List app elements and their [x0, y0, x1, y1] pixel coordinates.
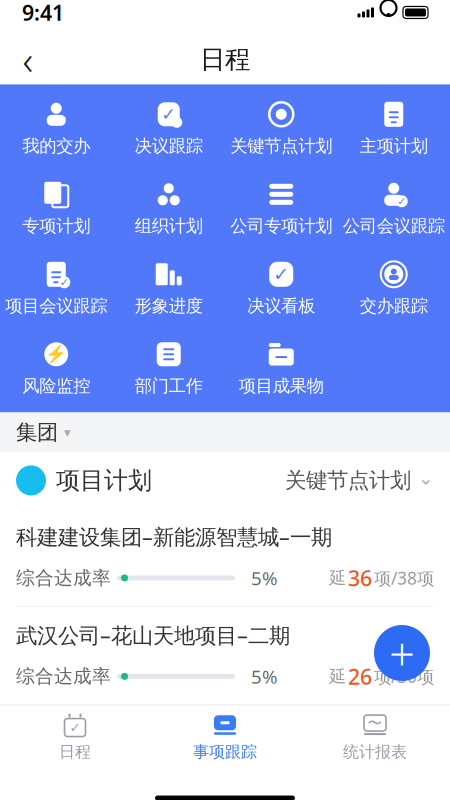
staticText: 主项计划 [360, 135, 428, 157]
staticText: 公司会议跟踪 [343, 215, 445, 237]
button[interactable]: 武汉公司–花山天地项目–二期 [0, 607, 450, 705]
staticText: 9:41 [22, 0, 64, 27]
staticText: ▾ [64, 425, 71, 440]
staticText: 决议看板 [247, 295, 315, 317]
button[interactable]: 我的交办 [0, 94, 112, 162]
staticText: 风险监控 [22, 375, 90, 397]
staticText: ✓ [397, 195, 406, 207]
button[interactable]: ✓ [0, 711, 150, 763]
staticText: 5% [251, 565, 278, 590]
button[interactable]: 集团 [0, 412, 450, 452]
button[interactable]: 〜 [300, 711, 450, 763]
button[interactable]: ✓ [225, 254, 337, 322]
staticText: 组织计划 [135, 215, 203, 237]
staticText: 36 [348, 564, 372, 592]
button[interactable]: ✓ [0, 254, 112, 322]
staticText: 统计报表 [343, 742, 407, 762]
staticText: ✓ [161, 104, 176, 124]
staticText: 形象进度 [135, 295, 203, 317]
staticText: 关键节点计划 [285, 467, 411, 493]
staticText: ✓ [69, 720, 80, 735]
button[interactable]: 组织计划 [112, 174, 225, 242]
staticText: 项/30项 [374, 665, 434, 688]
button[interactable]: ✓ [337, 174, 450, 242]
button[interactable]: 项目计划 [0, 452, 450, 508]
button[interactable]: 事项跟踪 [150, 711, 300, 763]
staticText: 5% [251, 664, 278, 689]
button[interactable]: 专项计划 [0, 174, 112, 242]
button[interactable]: ✓ [112, 94, 225, 162]
staticText: ⚡ [45, 344, 67, 364]
staticText: 部门工作 [135, 375, 203, 397]
staticText: 交办跟踪 [360, 295, 428, 317]
staticText: 项目成果物 [239, 375, 324, 397]
staticText: 26 [348, 662, 372, 690]
staticText: ⌄ [418, 467, 434, 488]
staticText: 项/38项 [374, 566, 434, 589]
staticText: 延 [329, 567, 346, 589]
staticText: ✓ [273, 264, 289, 285]
staticText: 我的交办 [22, 135, 90, 157]
staticText: 关键节点计划 [230, 135, 332, 157]
button[interactable]: 形象进度 [112, 254, 225, 322]
button[interactable]: Add [374, 625, 430, 681]
button[interactable]: 交办跟踪 [337, 254, 450, 322]
staticText: 武汉公司–花山天地项目–二期 [16, 621, 290, 649]
staticText: ‹ [22, 33, 33, 86]
staticText: 科建建设集团–新能源智慧城–一期 [16, 522, 332, 551]
button[interactable]: 公司专项计划 [225, 174, 337, 242]
staticText: 综合达成率 [16, 665, 111, 688]
button[interactable]: 科建建设集团–新能源智慧城–一期 [0, 508, 450, 606]
staticText: 事项跟踪 [193, 742, 257, 762]
button[interactable]: 项目成果物 [225, 334, 337, 402]
staticText: 延 [329, 666, 346, 687]
staticText: 专项计划 [22, 215, 90, 237]
staticText: ✓ [60, 276, 69, 288]
staticText: 日程 [200, 44, 250, 75]
staticText: 项目计划 [56, 466, 152, 495]
button[interactable]: ⚡ [0, 334, 112, 402]
staticText: 公司专项计划 [230, 215, 332, 237]
staticText: 日程 [59, 742, 91, 762]
staticText: 集团 [16, 419, 58, 445]
button[interactable]: 部门工作 [112, 334, 225, 402]
staticText: 〜 [367, 714, 382, 732]
button[interactable]: Back [6, 37, 50, 81]
staticText: 项目会议跟踪 [5, 295, 107, 317]
staticText: 综合达成率 [16, 566, 111, 589]
button[interactable]: 主项计划 [337, 94, 450, 162]
staticText: + [389, 623, 415, 683]
button[interactable]: 关键节点计划 [225, 94, 337, 162]
staticText: 决议跟踪 [135, 135, 203, 157]
